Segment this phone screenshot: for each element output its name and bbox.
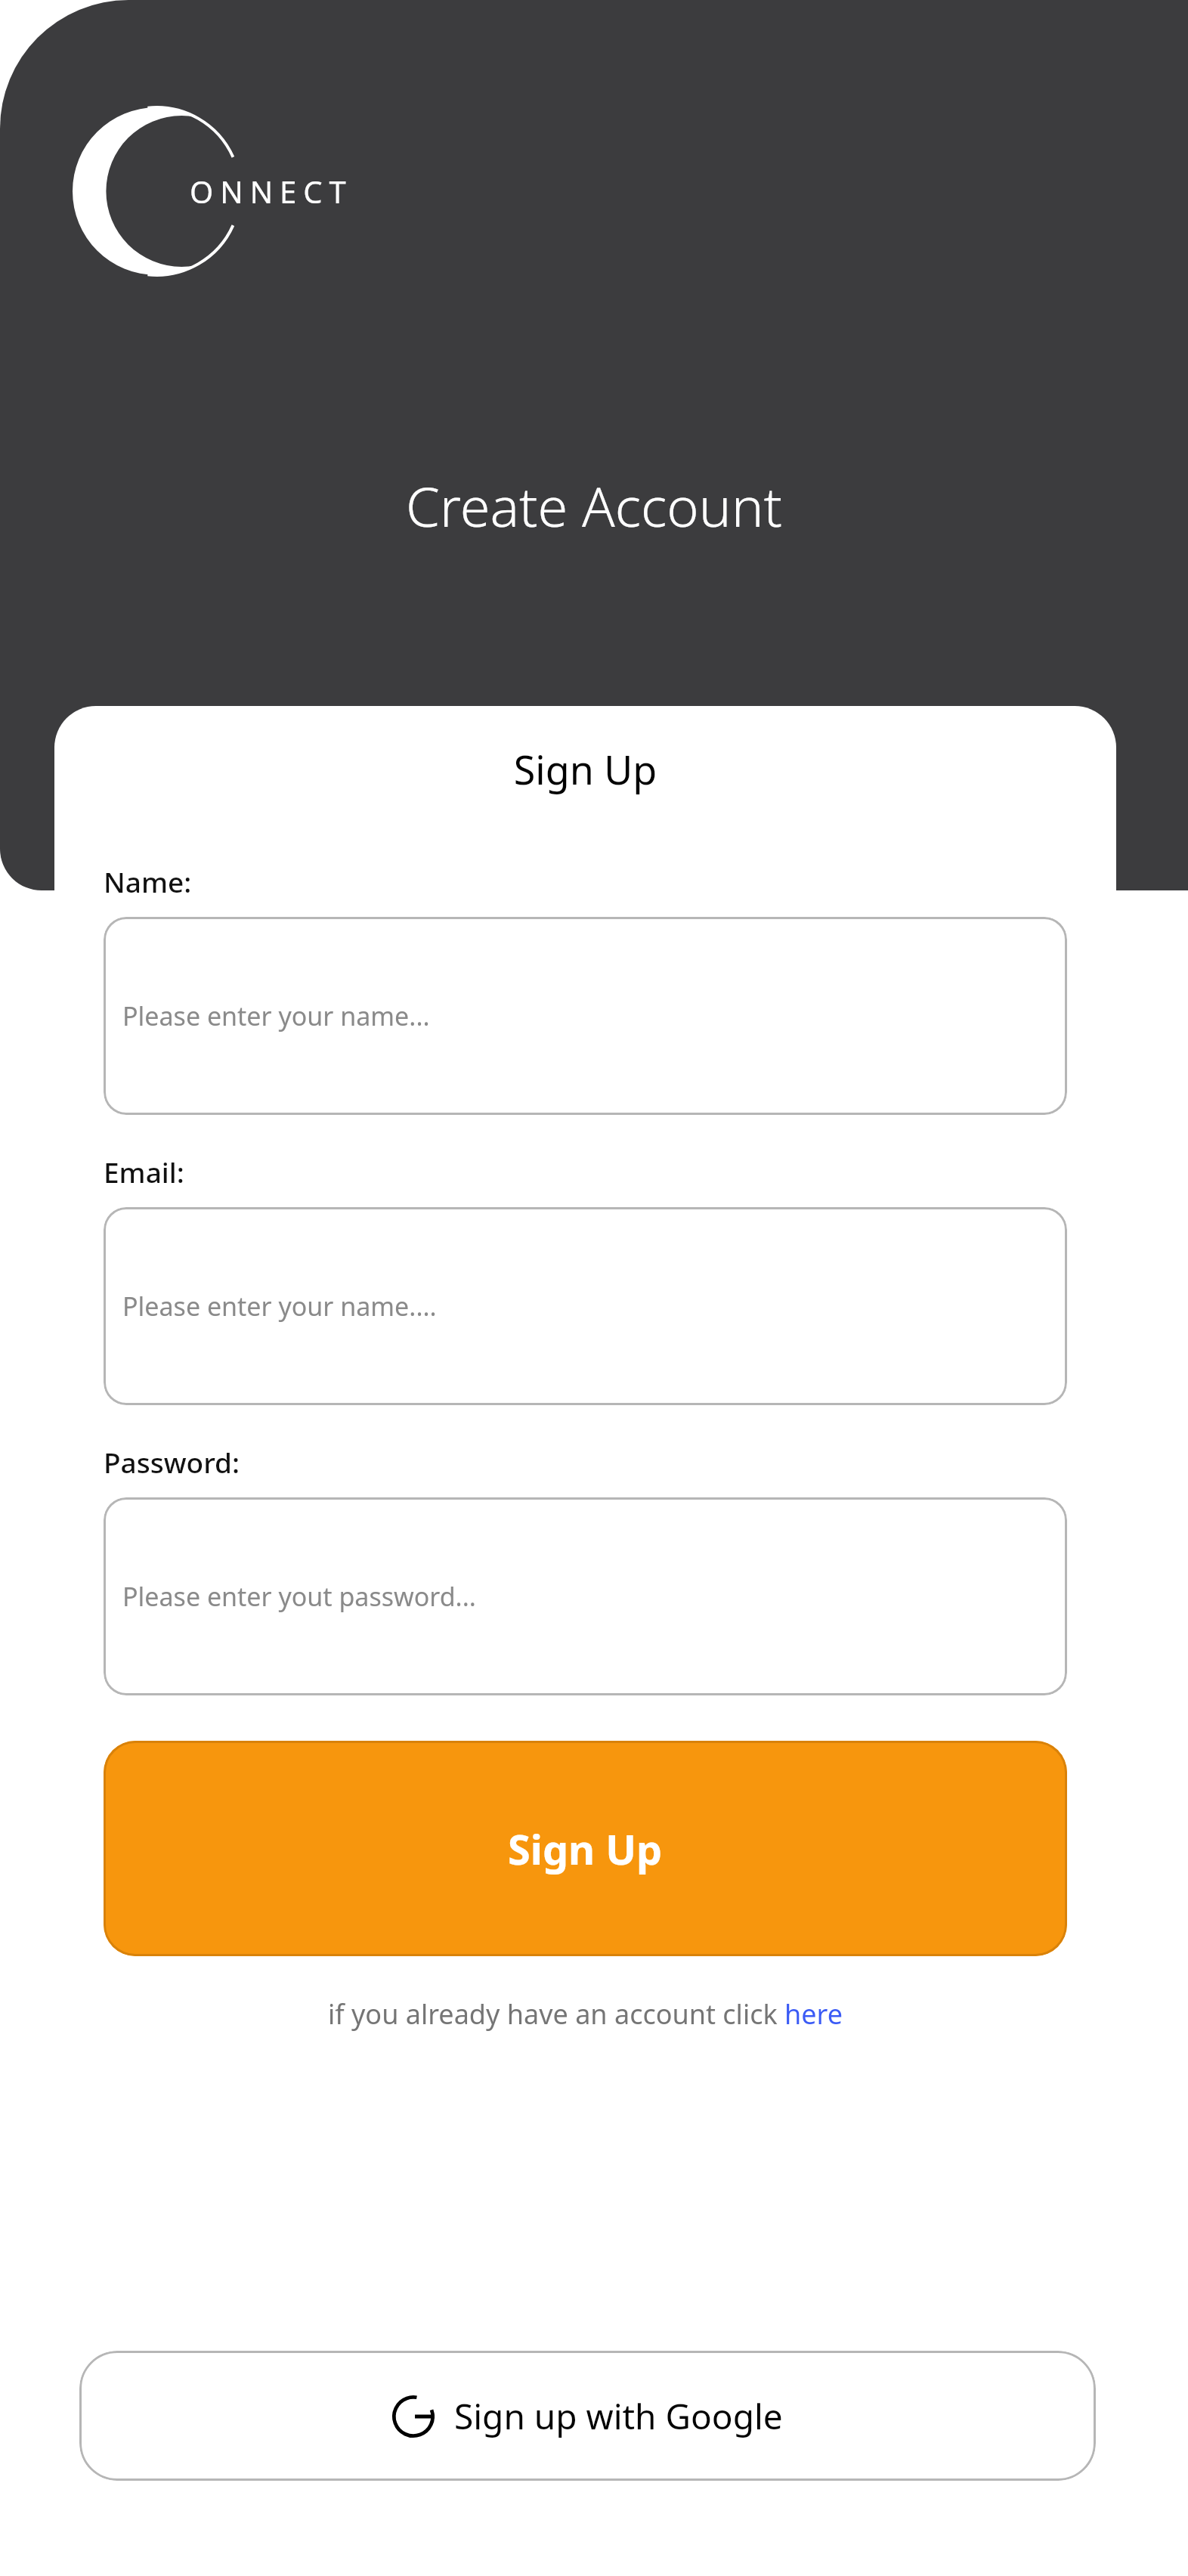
button[interactable]: Sign up with Google	[79, 2351, 1096, 2481]
staticText: ONNECT	[190, 171, 353, 212]
staticText: Sign Up	[508, 1821, 663, 1877]
button[interactable]: Please enter yout password...	[104, 1497, 1067, 1695]
staticText: Sign Up	[104, 742, 1067, 796]
staticText: Name:	[104, 862, 192, 900]
staticText: if you already have an account click her…	[104, 1995, 1067, 2033]
button[interactable]: if you already have an account click her…	[104, 1995, 1067, 2033]
staticText: Email:	[104, 1153, 184, 1190]
staticText: Create Account	[30, 469, 1158, 543]
staticText: Please enter yout password...	[122, 1579, 476, 1614]
staticText: Password:	[104, 1443, 240, 1481]
staticText: Please enter your name....	[122, 1289, 437, 1324]
staticText: Sign up with Google	[454, 2392, 783, 2440]
button[interactable]: Sign Up	[104, 1741, 1067, 1956]
button[interactable]: Connect logo	[73, 107, 353, 275]
staticText: Please enter your name...	[122, 999, 430, 1033]
button[interactable]: Please enter your name....	[104, 1207, 1067, 1405]
button[interactable]: Please enter your name...	[104, 917, 1067, 1115]
